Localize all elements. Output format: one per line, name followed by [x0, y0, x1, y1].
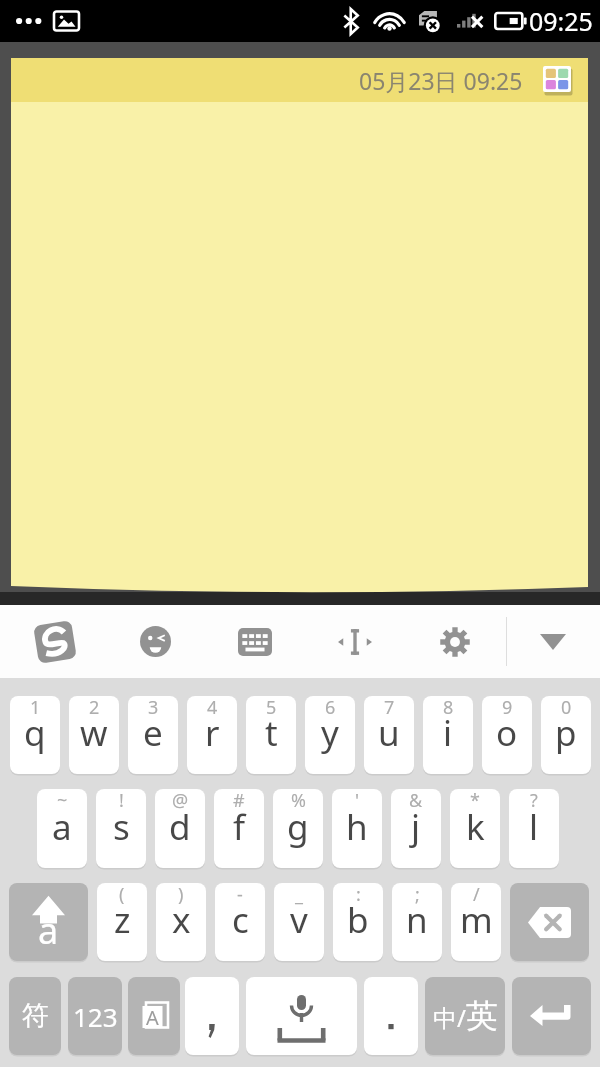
staticText: 09:25 — [529, 4, 593, 38]
staticText: b — [347, 896, 369, 944]
button[interactable]: ; — [392, 883, 442, 961]
button[interactable]: ( — [97, 883, 147, 961]
staticText: 5 — [266, 696, 277, 720]
button[interactable]: 1 — [10, 696, 60, 774]
staticText: 中/ — [433, 1001, 466, 1034]
staticText: * — [470, 789, 480, 813]
staticText: a — [52, 803, 72, 851]
staticText: a — [38, 906, 59, 955]
staticText: ? — [530, 789, 538, 813]
staticText: ' — [355, 789, 360, 813]
button[interactable]: Change note colour — [543, 66, 573, 95]
staticText: c — [232, 896, 249, 944]
staticText: : — [356, 883, 361, 907]
staticText: k — [466, 803, 485, 851]
staticText: # — [233, 789, 245, 813]
button[interactable]: 9 — [482, 696, 532, 774]
button[interactable]: Backspace — [510, 883, 589, 961]
staticText: ( — [119, 883, 125, 907]
button[interactable]: Emoji — [105, 605, 205, 678]
staticText: n — [406, 896, 428, 944]
button[interactable]: Sogou input method — [5, 605, 105, 678]
staticText: 符 — [22, 999, 49, 1033]
button[interactable]: Switch input language — [128, 977, 180, 1055]
staticText: 英 — [466, 996, 498, 1036]
button[interactable]: Hide keyboard — [513, 605, 593, 678]
button[interactable]: @ — [155, 789, 205, 868]
staticText: _ — [295, 883, 303, 907]
staticText: y — [321, 709, 339, 757]
button[interactable]: 3 — [128, 696, 178, 774]
button[interactable]: Period — [364, 977, 418, 1055]
staticText: ! — [119, 789, 124, 813]
staticText: m — [460, 896, 493, 944]
button[interactable]: _ — [274, 883, 324, 961]
staticText: & — [409, 789, 423, 813]
button[interactable]: 2 — [69, 696, 119, 774]
staticText: ) — [178, 883, 184, 907]
button[interactable]: : — [333, 883, 383, 961]
button[interactable]: ? — [509, 789, 559, 868]
button[interactable]: * — [450, 789, 500, 868]
button[interactable]: Chinese / English — [425, 977, 505, 1055]
staticText: 9 — [502, 696, 513, 720]
button[interactable]: 符 — [9, 977, 61, 1055]
staticText: 05月23日 09:25 — [359, 65, 523, 96]
button[interactable]: / — [451, 883, 501, 961]
staticText: 3 — [148, 696, 159, 720]
staticText: d — [169, 803, 191, 851]
staticText: e — [143, 709, 163, 757]
staticText: z — [114, 896, 131, 944]
button[interactable]: ' — [332, 789, 382, 868]
button[interactable]: Keyboard layout — [205, 605, 305, 678]
staticText: q — [24, 709, 46, 757]
staticText: % — [291, 789, 306, 813]
staticText: j — [411, 803, 421, 851]
staticText: / — [473, 883, 480, 907]
button[interactable]: 123 — [68, 977, 122, 1055]
button[interactable]: Space / voice input — [246, 977, 357, 1055]
button[interactable]: Settings — [405, 605, 505, 678]
button[interactable]: Shift — [9, 883, 88, 961]
staticText: w — [80, 709, 108, 757]
button[interactable]: 6 — [305, 696, 355, 774]
staticText: p — [555, 709, 577, 757]
staticText: ; — [415, 883, 420, 907]
staticText: A — [146, 1004, 159, 1031]
staticText: f — [233, 803, 246, 851]
staticText: h — [346, 803, 368, 851]
button[interactable]: ) — [156, 883, 206, 961]
staticText: 0 — [561, 696, 572, 720]
button[interactable]: 4 — [187, 696, 237, 774]
button[interactable]: - — [215, 883, 265, 961]
staticText: 123 — [73, 999, 118, 1034]
button[interactable]: ! — [96, 789, 146, 868]
staticText: 1 — [30, 696, 41, 720]
staticText: s — [113, 803, 130, 851]
staticText: 7 — [384, 696, 395, 720]
staticText: t — [265, 709, 278, 757]
button[interactable]: Move cursor — [305, 605, 405, 678]
button[interactable]: & — [391, 789, 441, 868]
button[interactable]: ~ — [37, 789, 87, 868]
button[interactable]: 0 — [541, 696, 591, 774]
staticText: u — [378, 709, 400, 757]
staticText: o — [496, 709, 518, 757]
staticText: g — [287, 803, 309, 851]
button[interactable]: Comma — [185, 977, 239, 1055]
button[interactable]: Enter — [512, 977, 591, 1055]
button[interactable]: 7 — [364, 696, 414, 774]
staticText: i — [443, 709, 453, 757]
button[interactable]: # — [214, 789, 264, 868]
staticText: 6 — [325, 696, 336, 720]
staticText: 8 — [443, 696, 454, 720]
staticText: - — [237, 883, 243, 907]
button[interactable]: % — [273, 789, 323, 868]
staticText: r — [205, 709, 220, 757]
button[interactable]: 8 — [423, 696, 473, 774]
staticText: v — [290, 896, 308, 944]
staticText: 2 — [89, 696, 100, 720]
button[interactable]: 5 — [246, 696, 296, 774]
staticText: ~ — [57, 789, 68, 813]
staticText: x — [172, 896, 191, 944]
